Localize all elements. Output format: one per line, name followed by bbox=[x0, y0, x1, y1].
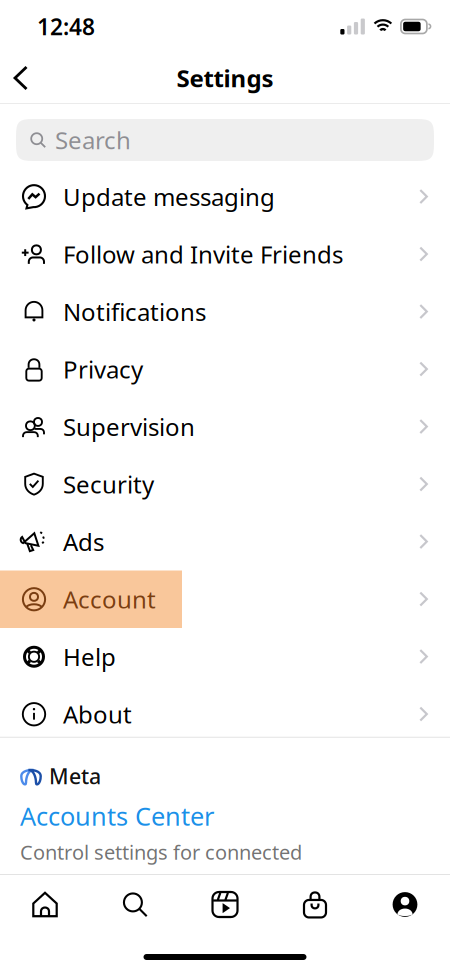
staticText: Accounts Center bbox=[20, 799, 214, 833]
button[interactable]: Follow and Invite Friends bbox=[0, 225, 450, 283]
staticText: Ads bbox=[63, 526, 104, 558]
button[interactable]: Search bbox=[0, 104, 450, 168]
button[interactable]: Ads bbox=[0, 513, 450, 570]
staticText: Notifications bbox=[63, 296, 206, 328]
staticText: Help bbox=[63, 641, 116, 673]
button[interactable]: Help bbox=[0, 628, 450, 685]
button[interactable]: Privacy bbox=[0, 340, 450, 398]
button[interactable]: Update messaging bbox=[0, 168, 450, 225]
button[interactable]: About bbox=[0, 685, 450, 743]
button[interactable]: Reels bbox=[180, 875, 270, 934]
staticText: Meta bbox=[49, 762, 101, 790]
button[interactable]: Search bbox=[90, 875, 180, 934]
staticText: About bbox=[63, 698, 132, 730]
staticText: Update messaging bbox=[63, 181, 275, 213]
button[interactable]: Account bbox=[0, 570, 450, 628]
staticText: Settings bbox=[176, 62, 273, 94]
staticText: Follow and Invite Friends bbox=[63, 238, 343, 270]
button[interactable]: Accounts Center bbox=[0, 790, 214, 833]
staticText: Security bbox=[63, 468, 154, 500]
button[interactable]: Home bbox=[0, 875, 90, 934]
staticText: Supervision bbox=[63, 411, 195, 443]
button[interactable]: Back bbox=[0, 54, 43, 102]
button[interactable]: Security bbox=[0, 455, 450, 513]
staticText: Account bbox=[63, 583, 156, 615]
staticText: Privacy bbox=[63, 353, 143, 385]
button[interactable]: Notifications bbox=[0, 283, 450, 340]
staticText: 12:48 bbox=[37, 11, 95, 41]
staticText: Search bbox=[55, 124, 131, 156]
button[interactable]: Supervision bbox=[0, 398, 450, 455]
staticText: Control settings for connected bbox=[20, 839, 302, 865]
button[interactable]: Profile bbox=[360, 875, 450, 934]
button[interactable]: Shop bbox=[270, 875, 360, 934]
